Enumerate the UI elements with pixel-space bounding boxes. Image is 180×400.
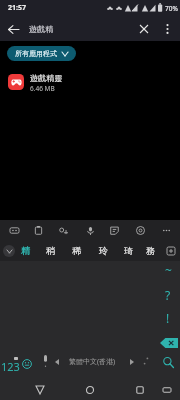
staticText: 70% bbox=[165, 4, 178, 13]
staticText: 琦 bbox=[124, 245, 133, 256]
staticText: 精 bbox=[21, 245, 30, 256]
staticText: 21:57 bbox=[8, 3, 26, 13]
button[interactable]: 繁體中文(香港) bbox=[52, 354, 136, 370]
button[interactable]: 玲 bbox=[92, 240, 114, 261]
button[interactable]: More bbox=[155, 220, 177, 240]
button[interactable]: Settings bbox=[129, 220, 151, 240]
button[interactable]: Recents bbox=[130, 380, 150, 400]
button[interactable]: Back bbox=[3, 19, 23, 39]
button[interactable]: 稍 bbox=[39, 240, 61, 261]
button[interactable]: 琦 bbox=[117, 240, 139, 261]
button[interactable]: Translate bbox=[52, 220, 74, 240]
staticText: 6.46 MB bbox=[30, 84, 55, 93]
button[interactable]: Clipboard bbox=[27, 220, 49, 240]
button[interactable]: More options bbox=[157, 19, 177, 39]
button[interactable]: ~ bbox=[157, 259, 179, 281]
staticText: 稍 bbox=[46, 245, 55, 256]
staticText: 稀 bbox=[72, 245, 81, 256]
button[interactable]: Voice input bbox=[79, 220, 101, 240]
button[interactable]: 精 bbox=[14, 240, 36, 261]
button[interactable]: Clear bbox=[134, 19, 154, 39]
button[interactable]: Search bbox=[157, 351, 179, 373]
button[interactable]: 123 bbox=[0, 353, 21, 374]
button[interactable]: Keyboard bbox=[3, 220, 25, 240]
button[interactable]: Back bbox=[30, 380, 50, 400]
button[interactable]: 稀 bbox=[65, 240, 87, 261]
staticText: 務 bbox=[146, 245, 155, 256]
button[interactable]: Stickers bbox=[103, 220, 125, 240]
button[interactable]: Switch keyboard bbox=[157, 380, 177, 400]
button[interactable]: 遊戲精靈 bbox=[0, 68, 180, 96]
staticText: 遊戲精 bbox=[29, 24, 53, 34]
button[interactable]: 所有應用程式 bbox=[7, 46, 76, 61]
button[interactable]: ! bbox=[157, 307, 179, 329]
staticText: 繁體中文(香港) bbox=[69, 357, 116, 367]
button[interactable]: Keyboard modes bbox=[162, 242, 180, 260]
staticText: 遊戲精靈 bbox=[30, 73, 62, 83]
button[interactable]: ? bbox=[157, 284, 179, 306]
staticText: 所有應用程式 bbox=[15, 49, 57, 58]
button[interactable]: Home bbox=[80, 380, 100, 400]
button[interactable]: Symbols bbox=[38, 352, 52, 366]
button[interactable]: 務 bbox=[139, 240, 161, 261]
button[interactable]: Emoji bbox=[18, 355, 36, 373]
button[interactable]: Backspace bbox=[158, 333, 180, 352]
button[interactable]: Cursor control bbox=[138, 354, 152, 368]
staticText: 玲 bbox=[99, 245, 108, 256]
button[interactable]: Expand suggestions bbox=[3, 245, 15, 257]
staticText: 123 bbox=[1, 359, 20, 374]
staticText: ? bbox=[165, 287, 171, 303]
staticText: ! bbox=[166, 310, 170, 326]
staticText: ~ bbox=[165, 262, 172, 278]
